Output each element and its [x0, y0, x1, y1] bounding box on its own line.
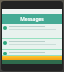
button[interactable]: [2, 24, 62, 38]
staticText: Messages: [20, 16, 44, 23]
button[interactable]: [2, 39, 62, 49]
button[interactable]: [2, 50, 62, 55]
